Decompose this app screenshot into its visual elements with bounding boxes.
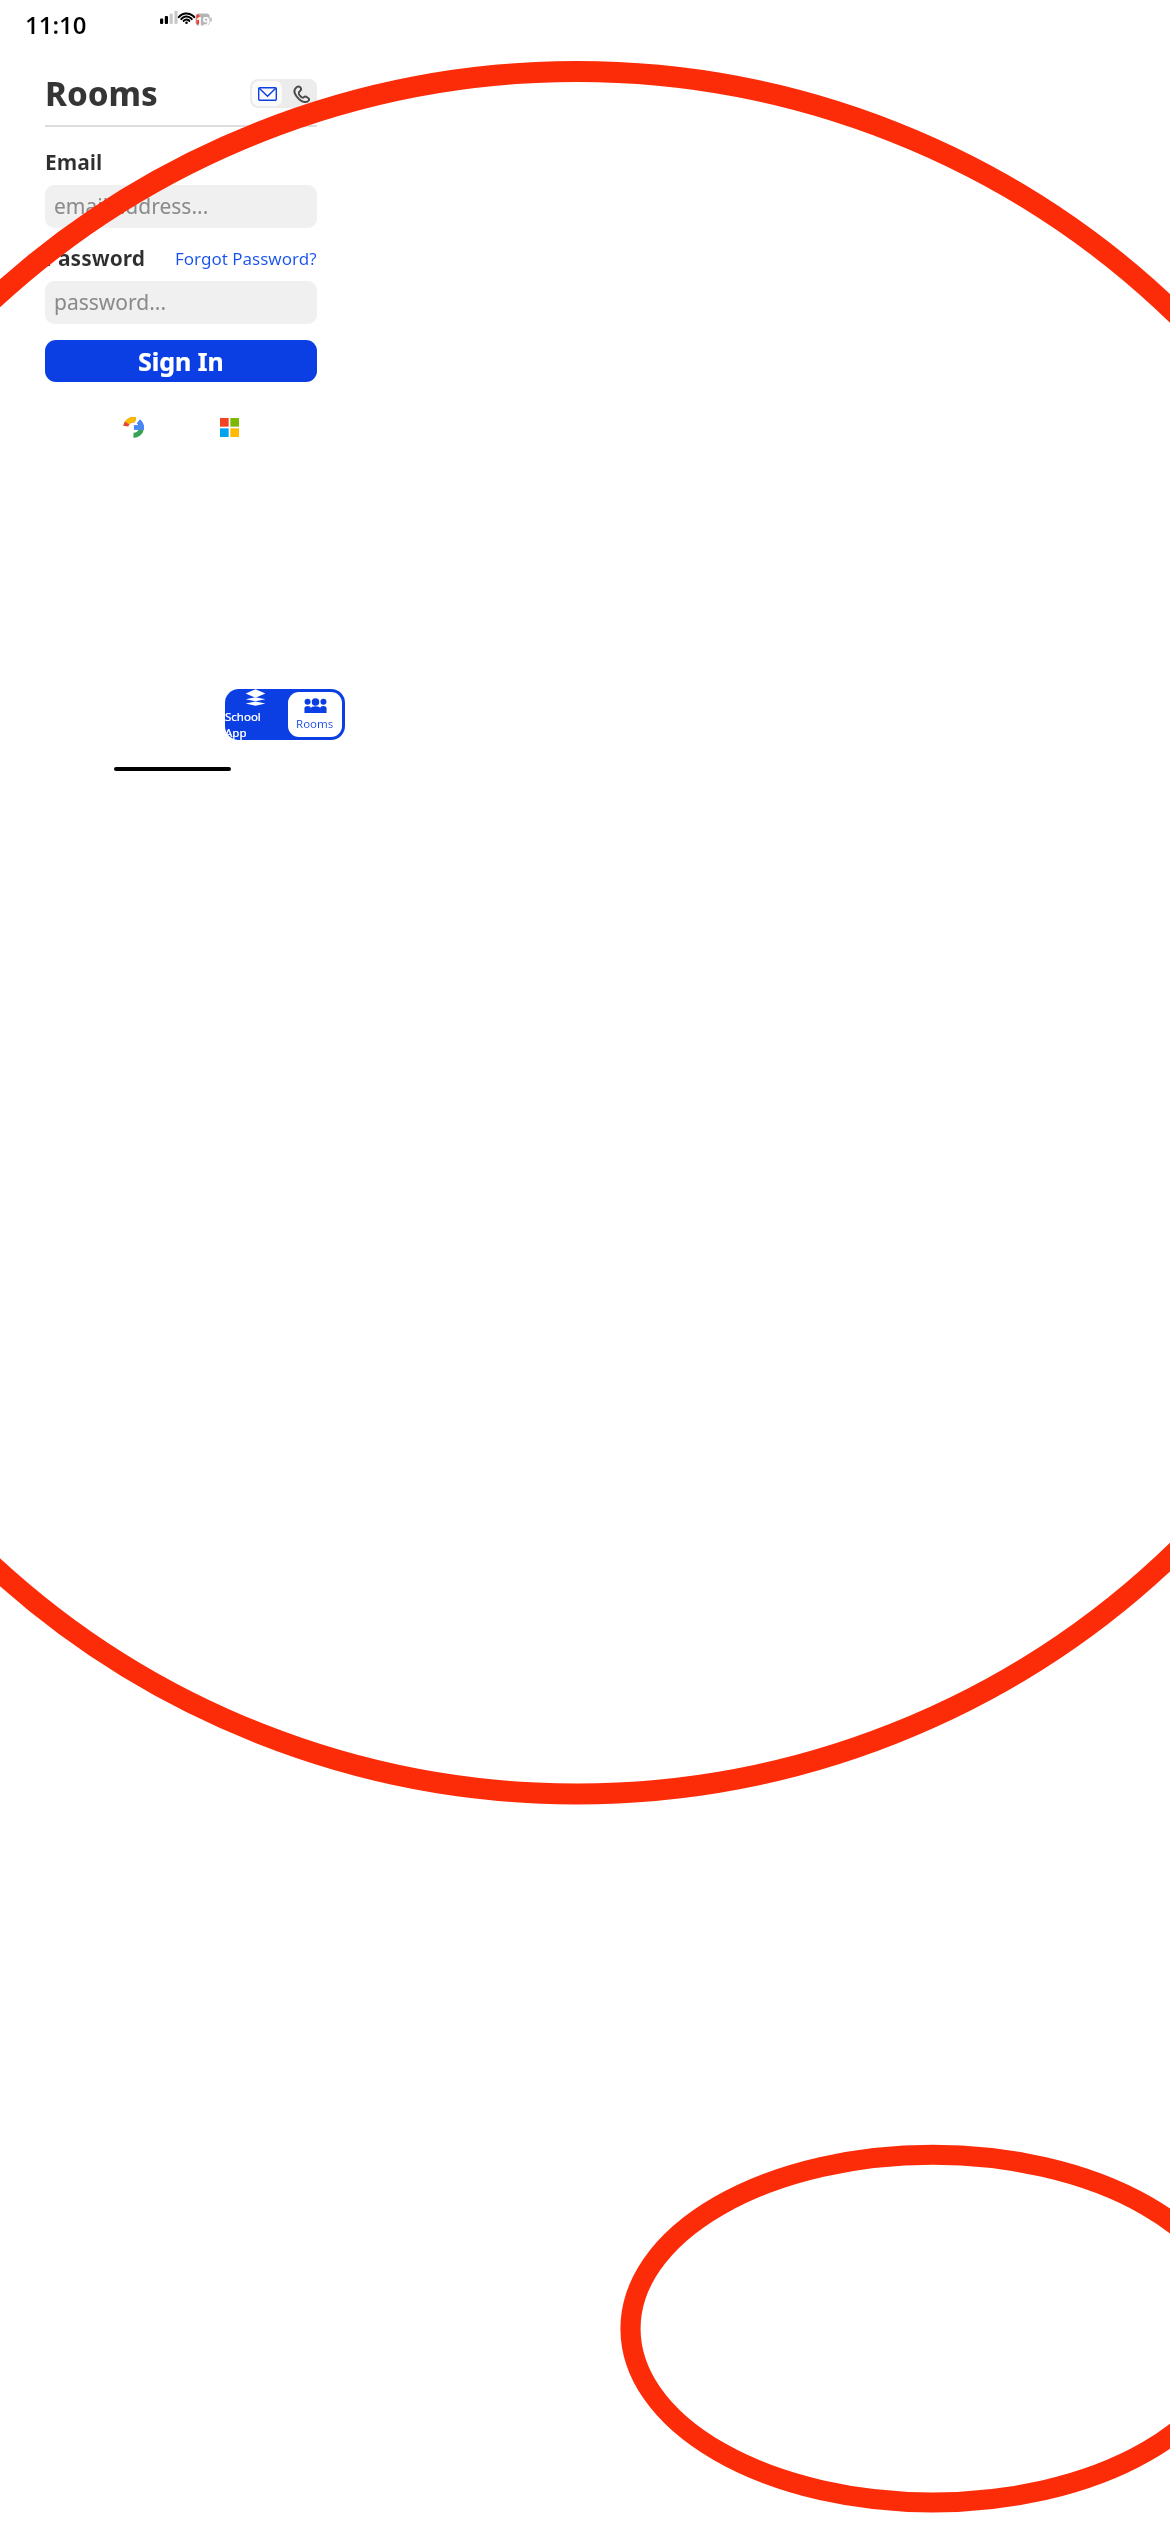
button[interactable]: password... [45, 281, 317, 324]
button[interactable]: School App [225, 689, 285, 740]
staticText: Rooms [296, 716, 334, 732]
staticText: 11:10 [25, 8, 87, 41]
button[interactable]: Sign In [45, 340, 317, 382]
button[interactable]: email address... [45, 185, 317, 228]
staticText: email address... [54, 192, 209, 221]
button[interactable]: Phone sign in [284, 79, 317, 108]
staticText: 19 [196, 13, 210, 29]
staticText: Email [45, 148, 103, 177]
button[interactable]: Email sign in [252, 81, 282, 106]
staticText: password... [54, 288, 167, 317]
button[interactable]: Forgot Password? [175, 247, 317, 270]
button[interactable]: Sign in with Microsoft [209, 407, 250, 448]
button[interactable]: Sign in with Google [113, 407, 154, 448]
button[interactable]: Rooms [288, 692, 342, 737]
staticText: Sign In [138, 344, 224, 378]
staticText: Password [45, 244, 175, 273]
staticText: Rooms [45, 71, 250, 116]
staticText: School App [225, 709, 285, 740]
staticText: Forgot Password? [175, 247, 317, 270]
